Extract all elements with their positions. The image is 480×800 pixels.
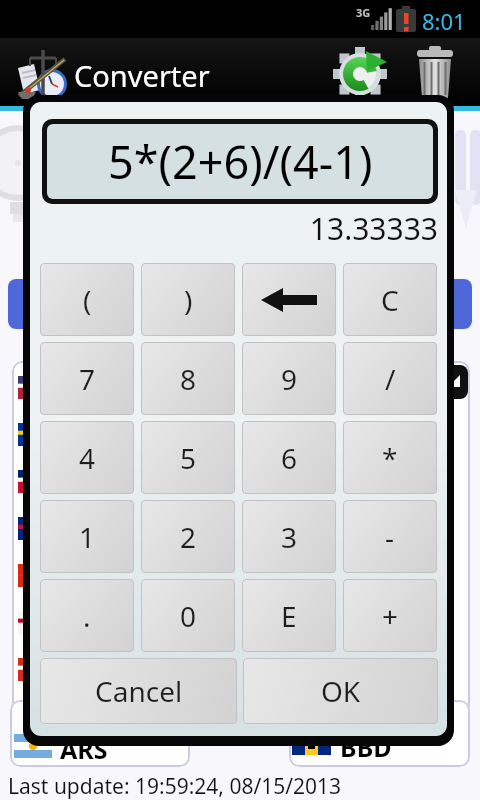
staticText: ARS	[60, 732, 108, 766]
button[interactable]: /	[343, 342, 437, 415]
staticText: 4	[79, 439, 96, 477]
button[interactable]: (	[40, 263, 134, 336]
staticText: )	[184, 281, 193, 319]
button[interactable]: )	[141, 263, 235, 336]
staticText: .	[83, 597, 91, 635]
staticText: 9	[281, 360, 298, 398]
button[interactable]: *	[343, 421, 437, 494]
button[interactable]	[10, 700, 190, 767]
staticText: /	[385, 360, 396, 398]
button[interactable]: Cancel	[40, 658, 237, 724]
staticText: +	[382, 597, 399, 635]
button[interactable]	[289, 700, 470, 767]
staticText: C	[381, 281, 399, 319]
staticText: Converter	[74, 56, 210, 95]
staticText: 8	[180, 360, 197, 398]
staticText: -	[385, 518, 395, 556]
button[interactable]: 5	[141, 421, 235, 494]
staticText: E	[281, 597, 297, 635]
button[interactable]: 2	[141, 500, 235, 573]
staticText: 1	[79, 518, 96, 556]
button[interactable]: -	[343, 500, 437, 573]
button[interactable]: 0	[141, 579, 235, 652]
staticText: BBD	[340, 730, 392, 764]
button[interactable]: 7	[40, 342, 134, 415]
button[interactable]: 9	[242, 342, 336, 415]
staticText: 0	[180, 597, 197, 635]
staticText: 8:01	[422, 6, 466, 36]
staticText: 6	[281, 439, 298, 477]
button[interactable]	[326, 46, 396, 102]
button[interactable]: E	[242, 579, 336, 652]
button[interactable]	[412, 44, 462, 104]
staticText: 7	[79, 360, 96, 398]
button[interactable]: C	[343, 263, 437, 336]
staticText: 2	[180, 518, 197, 556]
staticText: *	[382, 439, 398, 477]
button[interactable]	[244, 279, 472, 329]
staticText: 5	[180, 439, 197, 477]
button[interactable]: OK	[243, 658, 438, 724]
button[interactable]: .	[40, 579, 134, 652]
button[interactable]	[242, 263, 336, 336]
button[interactable]	[8, 279, 236, 329]
staticText: 3G	[356, 5, 371, 20]
button[interactable]: 8	[141, 342, 235, 415]
button[interactable]: +	[343, 579, 437, 652]
staticText: Cancel	[95, 672, 183, 710]
staticText: 5*(2+6)/(4-1)	[108, 131, 373, 192]
staticText: Last update: 19:59:24, 08/15/2013	[8, 772, 342, 800]
button[interactable]: 3	[242, 500, 336, 573]
button[interactable]: 4	[40, 421, 134, 494]
button[interactable]: 1	[40, 500, 134, 573]
staticText: 13.33333	[309, 208, 438, 248]
staticText: 3	[281, 518, 298, 556]
staticText: OK	[321, 672, 361, 710]
staticText: (	[83, 281, 92, 319]
button[interactable]: 6	[242, 421, 336, 494]
